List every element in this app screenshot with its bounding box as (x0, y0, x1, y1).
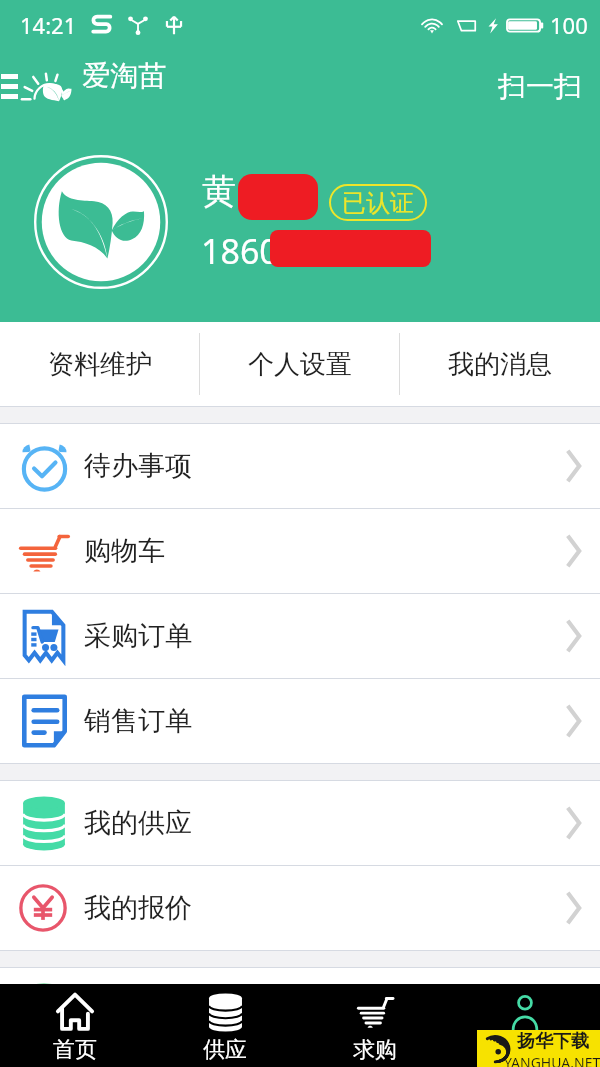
staticText: 我的供应 (84, 806, 192, 840)
staticText: 个人设置 (248, 348, 352, 381)
staticText: 扬华下载 (517, 1030, 589, 1053)
staticText: 资料维护 (48, 348, 152, 381)
staticText: 待办事项 (84, 449, 192, 483)
button[interactable]: 待办事项 (0, 424, 600, 508)
button[interactable]: 我的 (450, 984, 600, 1067)
button[interactable]: 采购订单 (0, 594, 600, 678)
button[interactable]: 我的消息 (400, 322, 600, 406)
staticText: 14:21 (20, 10, 77, 40)
button[interactable]: 扫一扫 (480, 57, 600, 116)
button[interactable]: Menu (0, 60, 24, 112)
staticText: 黄 (202, 170, 236, 213)
button[interactable]: 供应 (150, 984, 300, 1067)
staticText: 首页 (53, 1036, 97, 1064)
staticText: 求购 (353, 1036, 397, 1064)
staticText: 采购订单 (84, 619, 192, 653)
staticText: 我的求购 (84, 993, 192, 1027)
button[interactable]: 首页 (0, 984, 150, 1067)
button[interactable]: 求购 (300, 984, 450, 1067)
staticText: 100 (550, 10, 588, 40)
staticText: 1860 (201, 228, 279, 274)
staticText: 我的 (503, 1036, 547, 1064)
staticText: 供应 (203, 1036, 247, 1064)
staticText: 销售订单 (84, 704, 192, 738)
button[interactable]: 资料维护 (0, 322, 200, 406)
button[interactable]: 我的供应 (0, 781, 600, 865)
staticText: YANGHUA.NET (504, 1053, 600, 1067)
button[interactable]: 个人设置 (200, 322, 400, 406)
button[interactable]: 购物车 (0, 509, 600, 593)
button[interactable]: 销售订单 (0, 679, 600, 763)
staticText: 我的消息 (448, 348, 552, 381)
staticText: 已认证 (342, 188, 414, 218)
button[interactable]: 我的求购 (0, 968, 600, 1052)
button[interactable]: 我的报价 (0, 866, 600, 950)
staticText: 爱淘苗 (82, 58, 166, 93)
staticText: 购物车 (84, 534, 165, 568)
staticText: 扫一扫 (498, 69, 582, 104)
staticText: 我的报价 (84, 891, 192, 925)
